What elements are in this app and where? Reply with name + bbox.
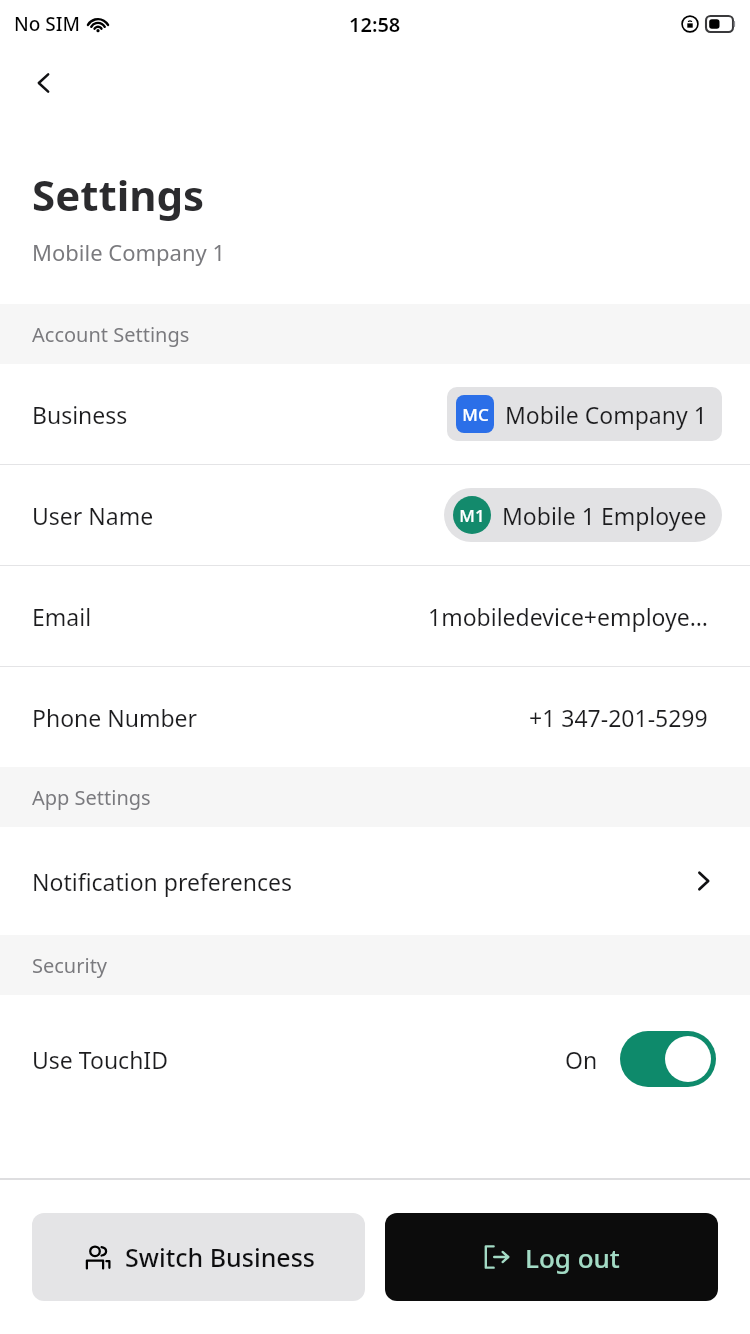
button[interactable]: User Name [0,465,750,565]
staticText: App Settings [32,784,151,811]
staticText: +1 347-201-5299 [529,702,708,733]
staticText: Mobile Company 1 [505,399,707,430]
staticText: Email [32,601,92,632]
staticText: Phone Number [32,702,198,733]
staticText: Log out [525,1240,620,1275]
staticText: Notification preferences [32,866,293,897]
staticText: Mobile 1 Employee [502,500,707,531]
button[interactable]: Back [16,55,72,111]
staticText: 1mobiledevice+employe… [428,601,708,632]
button[interactable]: Use TouchID toggle, On [620,1031,716,1087]
staticText: On [565,1044,598,1075]
button[interactable]: Phone Number [0,667,750,767]
button[interactable]: Log out [385,1213,718,1301]
button[interactable]: Notification preferences [0,827,750,935]
staticText: MC [462,403,489,426]
staticText: User Name [32,500,154,531]
staticText: Mobile Company 1 [32,237,226,267]
staticText: Use TouchID [32,1044,168,1075]
staticText: 12:58 [349,11,401,38]
staticText: Settings [32,166,205,223]
staticText: Business [32,399,128,430]
staticText: M1 [459,504,485,527]
staticText: Security [32,952,108,979]
staticText: Account Settings [32,321,190,348]
staticText: Switch Business [125,1240,315,1274]
button[interactable]: Switch Business [32,1213,365,1301]
button[interactable]: Business [0,364,750,464]
button[interactable]: Email [0,566,750,666]
staticText: No SIM [14,11,80,37]
